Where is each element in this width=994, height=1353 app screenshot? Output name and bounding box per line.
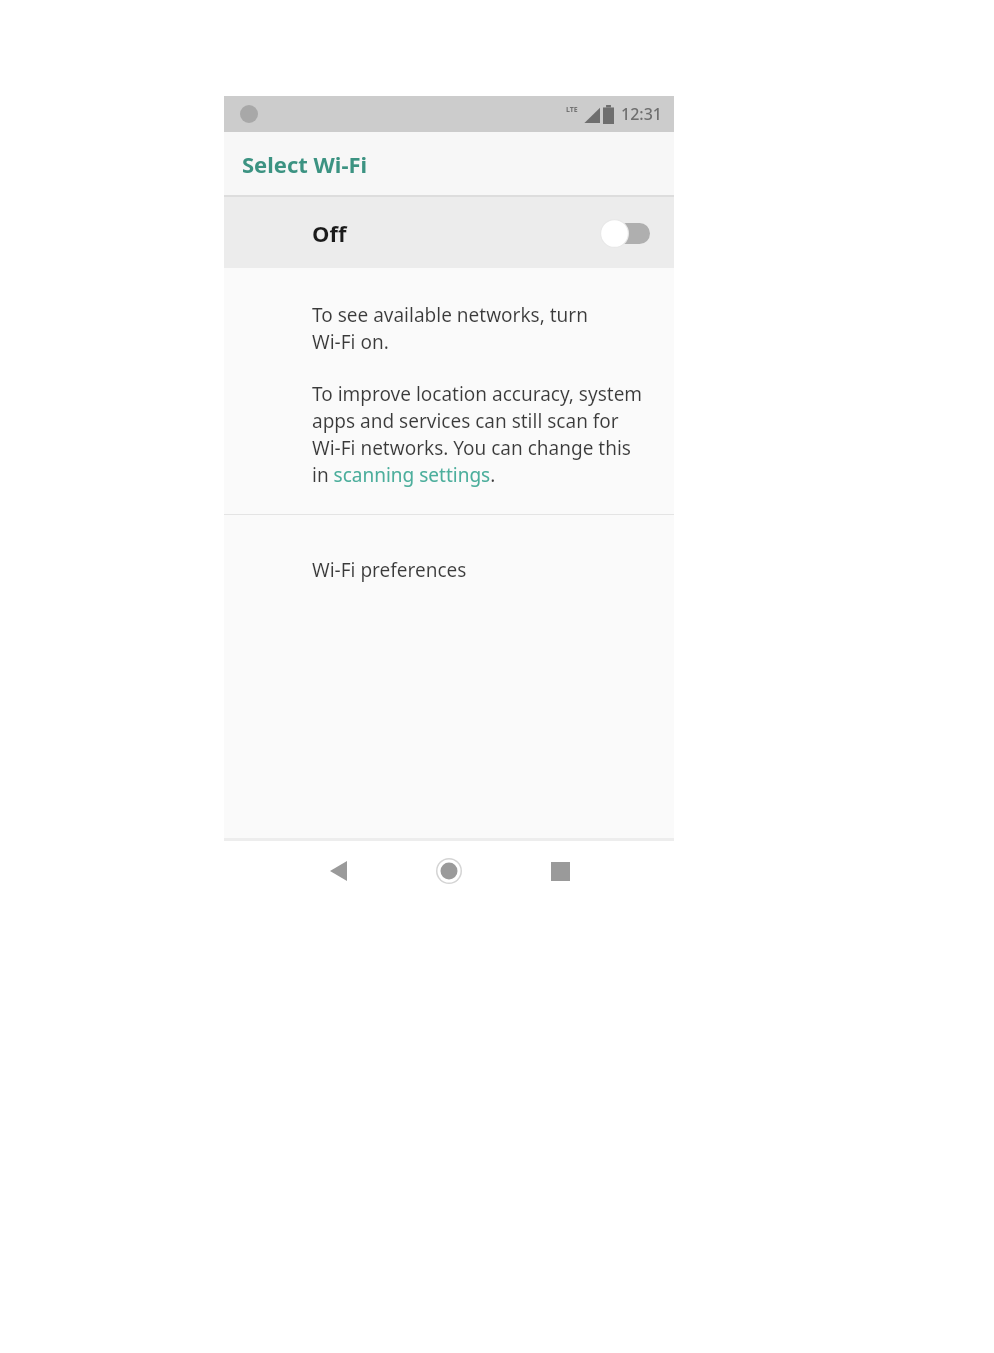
button[interactable]: Recent apps [538, 849, 582, 893]
button[interactable]: Wi-Fi preferences [224, 553, 674, 587]
staticText: 12:31 [621, 103, 662, 125]
staticText: To see available networks, turn Wi-Fi on… [312, 302, 588, 355]
button[interactable]: Home [425, 847, 473, 895]
button[interactable]: To improve location accuracy, system app… [312, 381, 643, 488]
staticText: Wi-Fi preferences [312, 557, 467, 583]
button[interactable]: Back [316, 849, 360, 893]
button[interactable]: Off [224, 197, 674, 268]
other: Wi-Fi toggle, off [600, 216, 650, 250]
staticText: Select Wi-Fi [242, 149, 368, 179]
staticText: LTE [566, 105, 578, 115]
staticText: Off [312, 218, 347, 248]
